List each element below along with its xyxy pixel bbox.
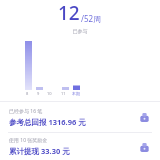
button[interactable]: 已经参与 16 笔	[0, 102, 160, 132]
staticText: 10	[47, 91, 52, 96]
other: 查看回报明细	[137, 110, 151, 124]
button[interactable]: 使用 10 张奖励金	[0, 133, 160, 160]
staticText: 11	[61, 91, 66, 96]
other: 查看提现明细	[137, 140, 151, 154]
staticText: 本期	[72, 91, 80, 96]
staticText: 8	[26, 91, 29, 96]
staticText: 已参与	[0, 28, 160, 34]
staticText: 参考总回报 1316.96 元	[9, 117, 86, 127]
staticText: 12	[58, 0, 80, 26]
staticText: 累计提现 33.30 元	[9, 146, 70, 156]
staticText: /52周	[81, 13, 102, 24]
staticText: 使用 10 张奖励金	[9, 137, 48, 144]
staticText: 已经参与 16 笔	[9, 108, 43, 115]
staticText: 9	[37, 91, 40, 96]
